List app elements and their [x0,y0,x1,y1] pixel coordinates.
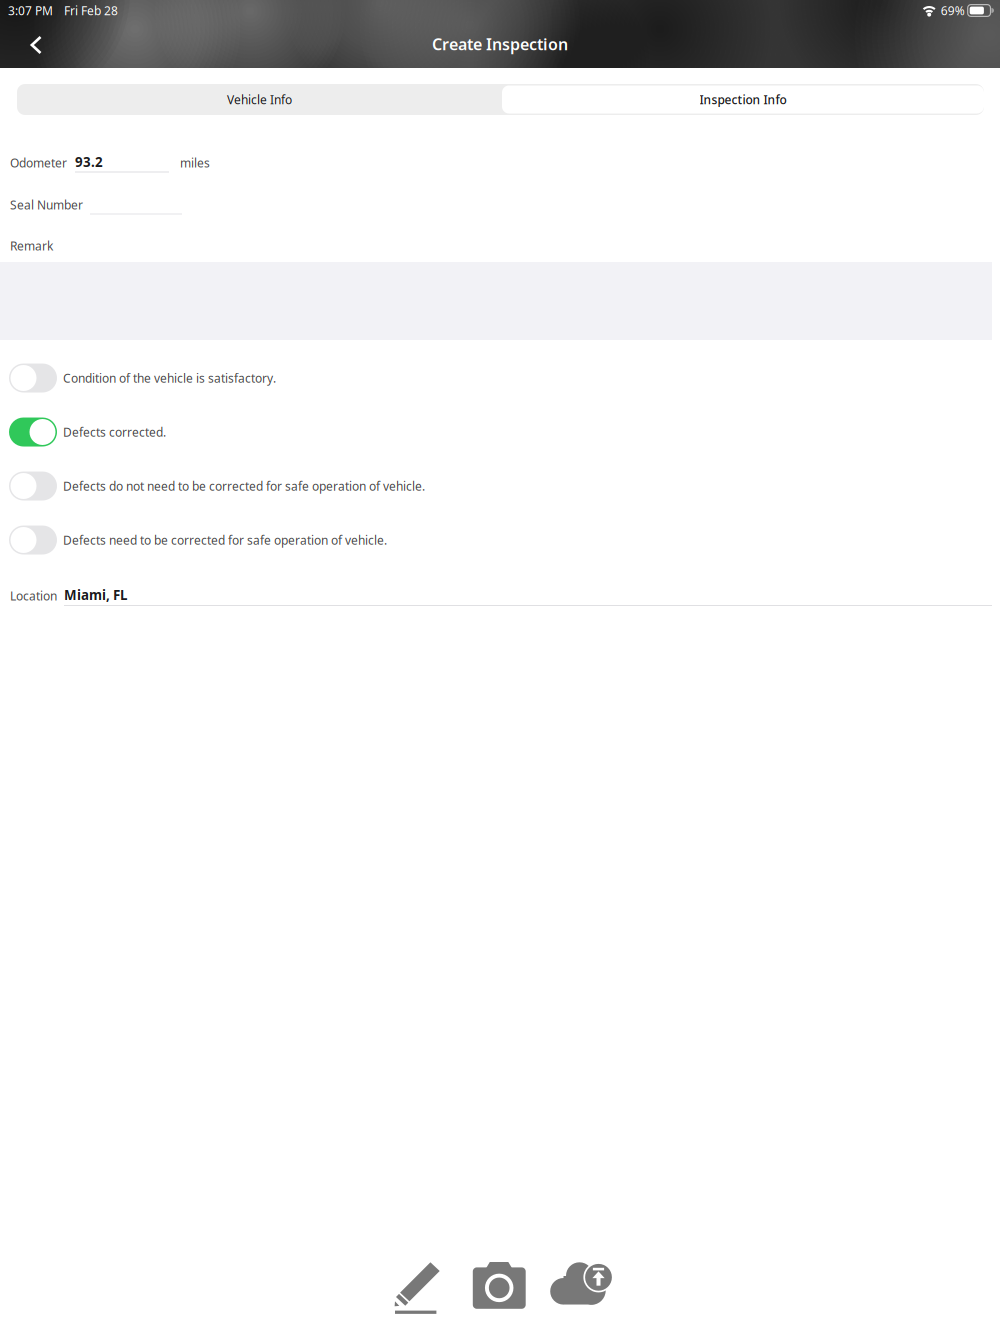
button[interactable]: Defects need to be corrected for safe op… [0,513,1000,567]
button[interactable]: Camera [464,1253,530,1315]
button[interactable]: Signature [382,1255,448,1317]
staticText: miles [180,155,210,171]
button[interactable]: Condition of the vehicle is satisfactory… [0,351,1000,405]
staticText: Remark [10,238,53,254]
staticText: Create Inspection [432,33,568,55]
staticText: Fri Feb 28 [64,2,118,18]
staticText: Condition of the vehicle is satisfactory… [63,370,276,386]
button[interactable]: Defects do not need to be corrected for … [0,459,1000,513]
staticText: Defects need to be corrected for safe op… [63,532,387,548]
button[interactable]: Odometer value [75,153,169,174]
staticText: 93.2 [75,153,103,171]
staticText: Seal Number [10,197,83,213]
staticText: Defects do not need to be corrected for … [63,478,425,494]
staticText: Odometer [10,155,67,171]
button[interactable]: Upload [546,1253,616,1315]
staticText: 69% [941,2,965,18]
button[interactable]: Defects corrected. [0,405,1000,459]
staticText: Location [10,588,57,604]
staticText: 3:07 PM [8,2,53,18]
button[interactable]: Location value [64,586,992,608]
button[interactable]: Vehicle Info [17,84,502,115]
staticText: Defects corrected. [63,424,166,440]
staticText: Miami, FL [64,586,127,604]
staticText: Inspection Info [699,91,786,107]
button[interactable]: Back [8,23,64,67]
button[interactable]: Seal Number field [90,197,182,218]
button[interactable]: Inspection Info [502,85,984,113]
staticText: Vehicle Info [227,91,292,107]
